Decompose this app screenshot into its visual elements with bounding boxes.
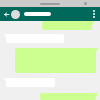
- button[interactable]: [15, 48, 98, 73]
- button[interactable]: [42, 21, 94, 30]
- button[interactable]: [40, 93, 98, 100]
- button[interactable]: Contact info: [11, 7, 51, 21]
- button[interactable]: Back: [1, 9, 11, 19]
- button[interactable]: More options: [89, 9, 99, 19]
